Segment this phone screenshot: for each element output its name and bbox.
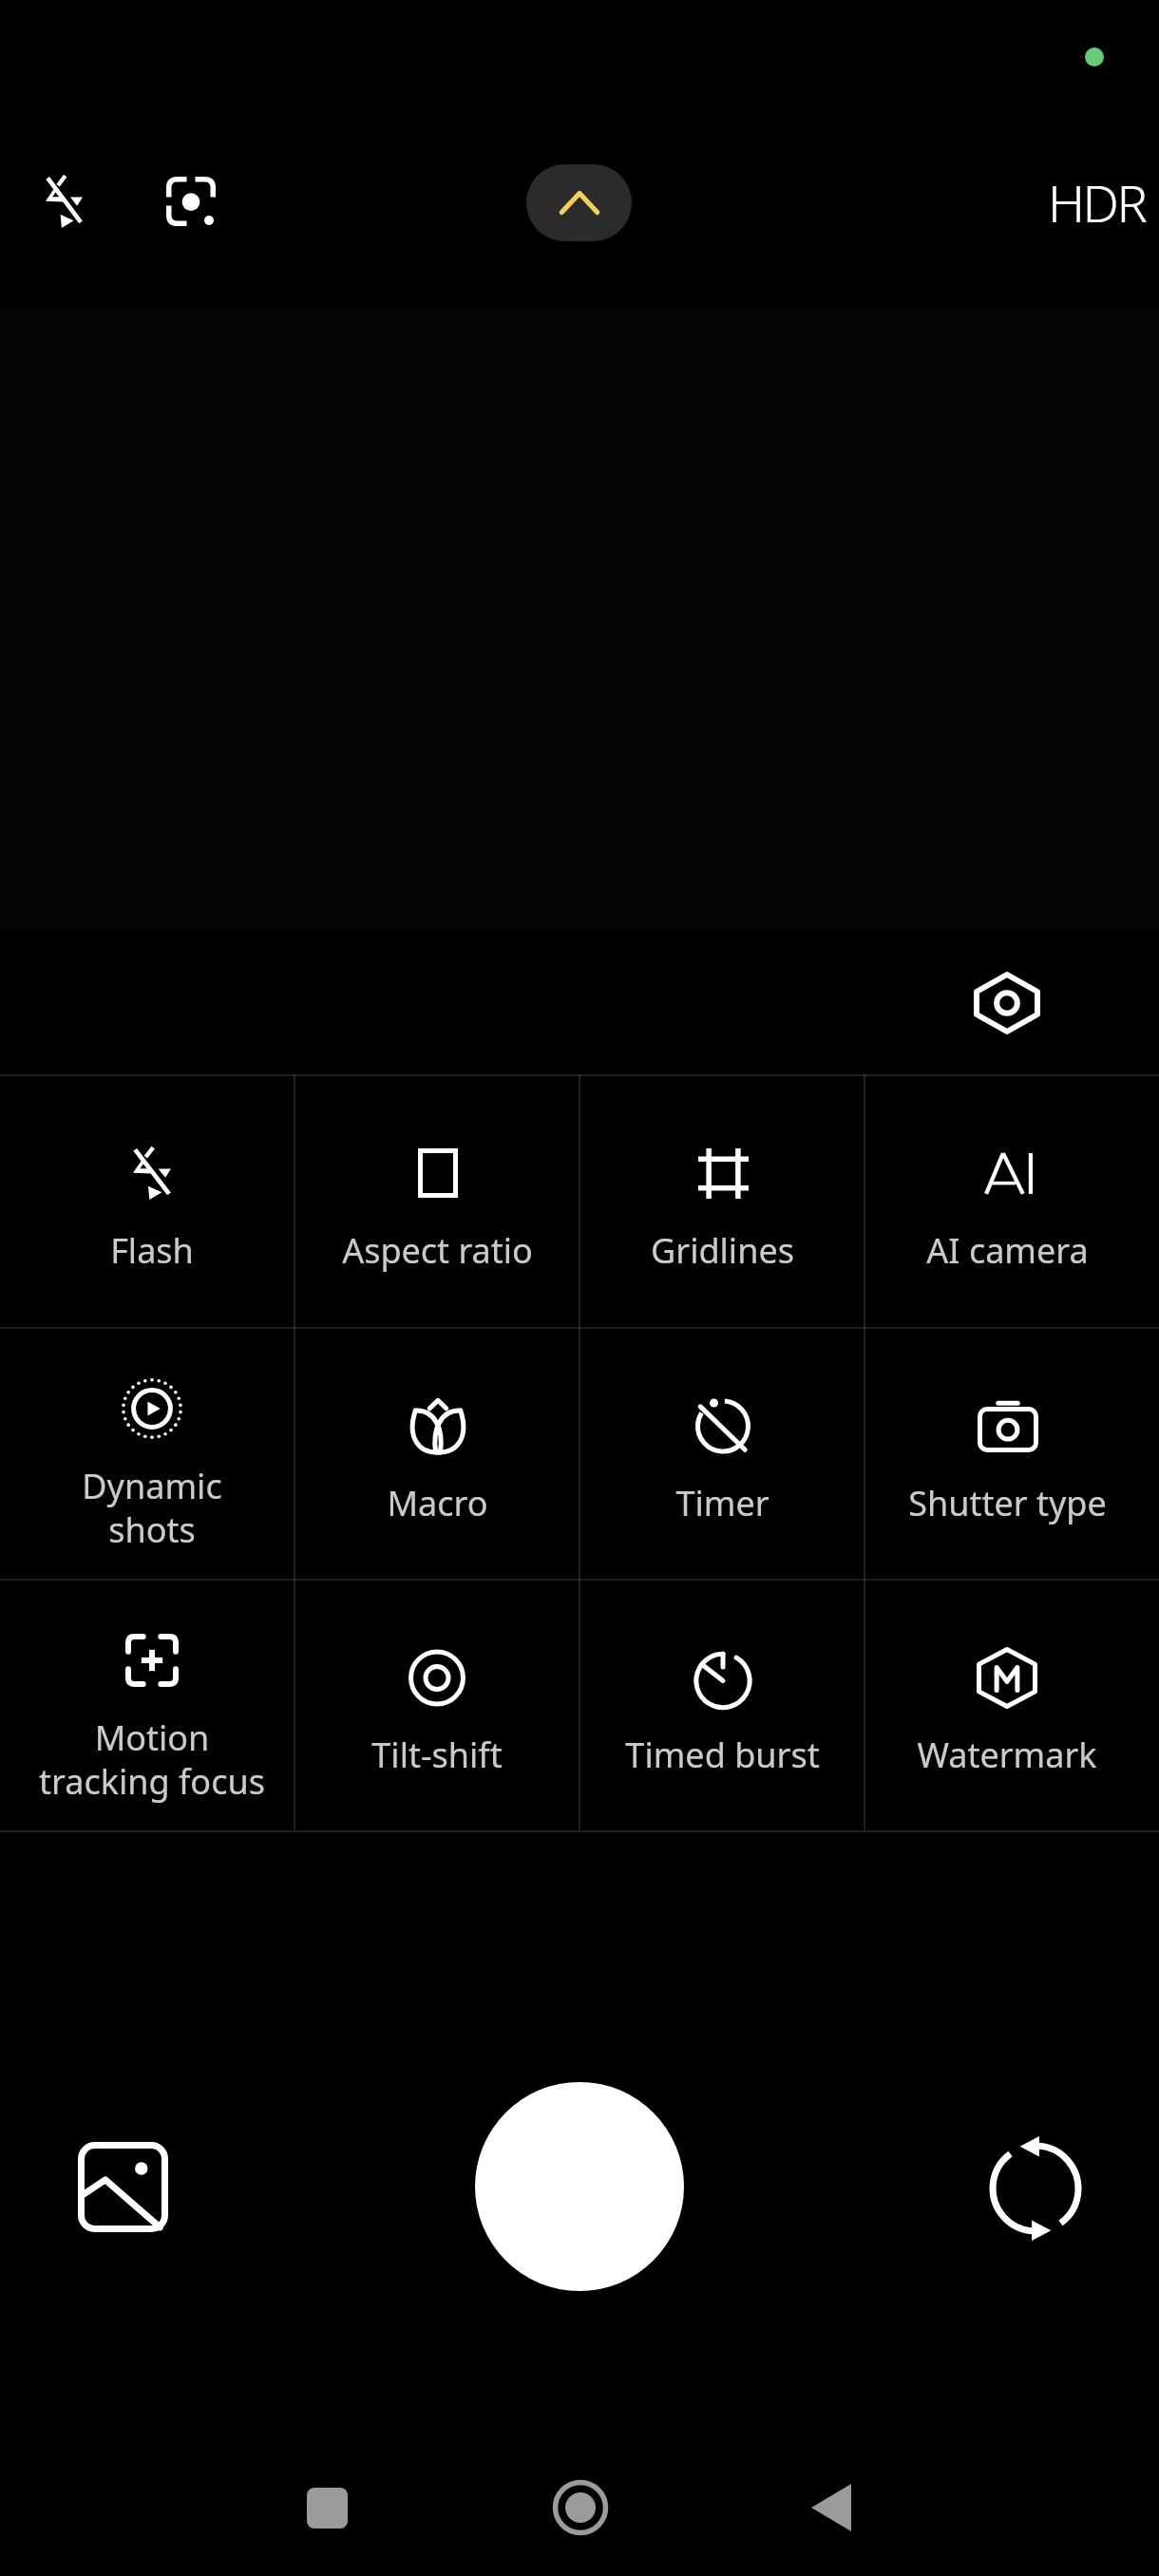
button[interactable]: Flash [9, 1074, 294, 1327]
button[interactable]: Show more options [526, 164, 632, 241]
staticText: Gridlines [651, 1227, 794, 1274]
button[interactable]: Timer [579, 1327, 864, 1579]
button[interactable]: Timed burst [579, 1579, 864, 1830]
staticText: Timer [675, 1480, 769, 1526]
staticText: Aspect ratio [342, 1227, 533, 1274]
button[interactable]: Tilt-shift [294, 1579, 579, 1830]
button[interactable]: Back [755, 2432, 907, 2576]
button[interactable]: Settings [961, 957, 1053, 1049]
button[interactable]: Flash off [20, 158, 107, 245]
button[interactable]: Gridlines [579, 1074, 864, 1327]
staticText: Timed burst [625, 1732, 820, 1778]
button[interactable]: Motion tracking focus [9, 1579, 294, 1830]
button[interactable]: Google Lens [147, 158, 235, 245]
button[interactable]: Home [504, 2432, 656, 2576]
staticText: Motion tracking focus [39, 1714, 265, 1805]
button[interactable]: HDR [1035, 159, 1157, 246]
button[interactable]: Macro [294, 1327, 579, 1579]
staticText: AI camera [926, 1227, 1089, 1274]
button[interactable]: Watermark [864, 1579, 1149, 1830]
staticText: Shutter type [908, 1480, 1107, 1526]
button[interactable]: Gallery [58, 2122, 187, 2251]
staticText: Tilt-shift [371, 1732, 503, 1778]
staticText: Flash [110, 1227, 194, 1274]
button[interactable]: Aspect ratio [294, 1074, 579, 1327]
staticText: Macro [387, 1480, 488, 1526]
staticText: Dynamic shots [82, 1463, 222, 1553]
button[interactable]: Shutter type [864, 1327, 1149, 1579]
button[interactable]: AI camera [864, 1074, 1149, 1327]
button[interactable]: Switch camera [971, 2124, 1100, 2253]
button[interactable]: Take photo [475, 2082, 684, 2291]
button[interactable]: Dynamic shots [9, 1327, 294, 1579]
staticText: HDR [1048, 167, 1146, 237]
button[interactable]: Recent apps [251, 2432, 403, 2576]
staticText: Watermark [917, 1732, 1097, 1778]
